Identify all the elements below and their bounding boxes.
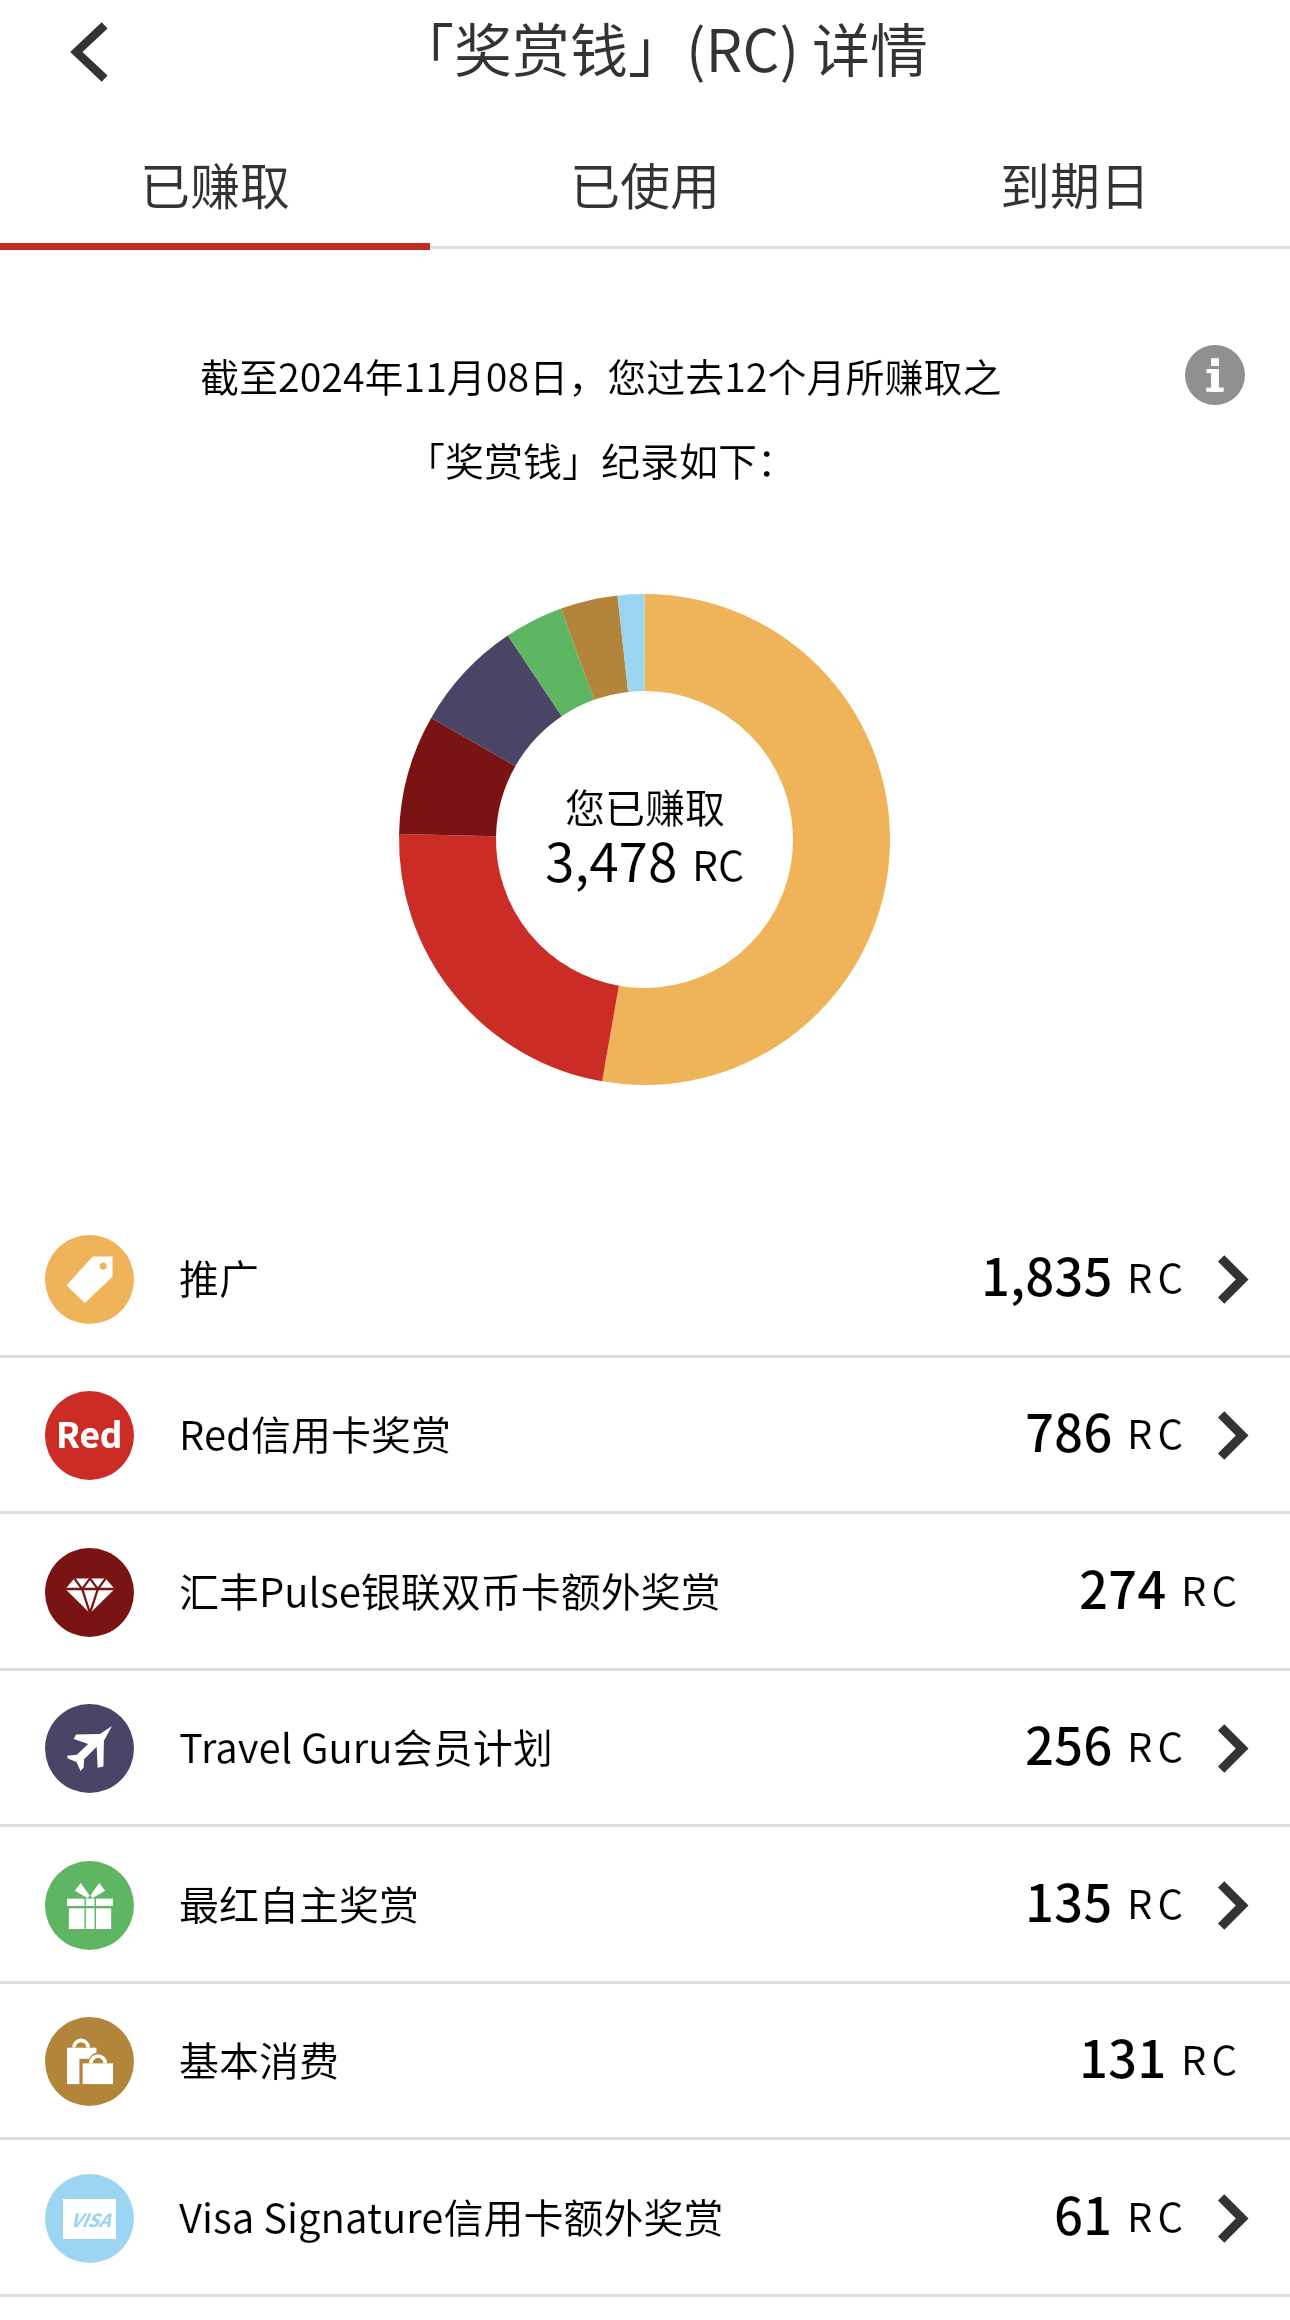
staticText: Red — [56, 1407, 123, 1458]
staticText: 「奖赏钱」纪录如下： — [406, 431, 797, 487]
staticText: 推广 — [179, 1248, 259, 1306]
staticText: 到期日 — [1000, 147, 1150, 219]
staticText: 1,835 — [981, 1237, 1113, 1311]
button[interactable]: Information — [1171, 331, 1259, 419]
staticText: RC — [1127, 1873, 1188, 1931]
staticText: 3,478 — [545, 821, 678, 898]
staticText: 基本消费 — [179, 2030, 339, 2088]
staticText: 「奖赏钱」(RC) 详情 — [396, 5, 929, 89]
staticText: Visa Signature信用卡额外奖赏 — [179, 2187, 724, 2245]
staticText: RC — [1181, 2029, 1242, 2087]
button[interactable]: 汇丰Pulse银联双币卡额外奖赏 — [0, 1514, 1290, 1671]
button[interactable]: Back — [45, 7, 135, 97]
staticText: 131 — [1079, 2019, 1167, 2093]
button[interactable]: Travel Guru会员计划 — [0, 1670, 1290, 1827]
staticText: 274 — [1079, 1550, 1167, 1624]
button[interactable]: 已使用 — [430, 122, 860, 244]
staticText: 汇丰Pulse银联双币卡额外奖赏 — [179, 1561, 721, 1619]
staticText: 您已赚取 — [565, 777, 725, 835]
button[interactable]: 到期日 — [860, 122, 1290, 244]
button[interactable]: Red — [0, 1357, 1290, 1514]
staticText: 已赚取 — [140, 147, 290, 219]
staticText: 已使用 — [570, 147, 720, 219]
button[interactable]: 最红自主奖赏 — [0, 1827, 1290, 1984]
staticText: 截至2024年11月08日，您过去12个月所赚取之 — [200, 347, 1002, 403]
staticText: 135 — [1025, 1863, 1113, 1937]
staticText: 最红自主奖赏 — [179, 1874, 419, 1932]
staticText: RC — [692, 833, 745, 892]
staticText: RC — [1127, 1716, 1188, 1774]
staticText: Red信用卡奖赏 — [179, 1404, 451, 1462]
staticText: RC — [1127, 2186, 1188, 2244]
staticText: 786 — [1025, 1393, 1113, 1467]
staticText: RC — [1181, 1560, 1242, 1618]
button[interactable]: 推广 — [0, 1201, 1290, 1358]
staticText: 256 — [1025, 1706, 1113, 1780]
button[interactable]: 已赚取 — [0, 122, 430, 244]
button[interactable]: 基本消费 — [0, 1983, 1290, 2140]
staticText: 61 — [1054, 2176, 1113, 2250]
staticText: VISA — [70, 2206, 110, 2232]
staticText: RC — [1127, 1403, 1188, 1461]
staticText: RC — [1127, 1247, 1188, 1305]
button[interactable]: VISA — [0, 2140, 1290, 2297]
staticText: Travel Guru会员计划 — [179, 1717, 553, 1775]
